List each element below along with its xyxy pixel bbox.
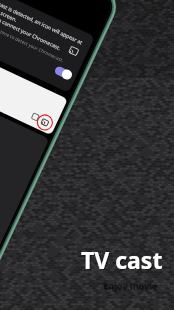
other: TV cast promotional screen: [0, 0, 174, 310]
button[interactable]: Cast icon: [0, 0, 80, 26]
